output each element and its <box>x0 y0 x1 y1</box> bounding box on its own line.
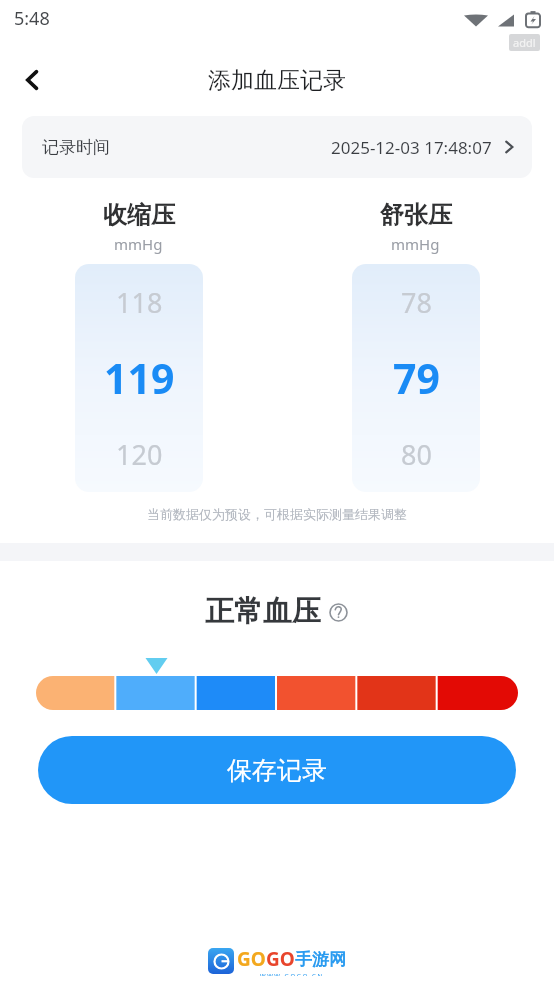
button[interactable]: 返回 <box>10 57 56 103</box>
button[interactable]: 记录时间 <box>22 116 532 178</box>
staticText: mmHg <box>391 234 440 254</box>
staticText: 5:48 <box>14 6 50 31</box>
staticText: 80 <box>401 436 432 473</box>
staticText: W W W . G O G O . C N <box>260 972 323 976</box>
staticText: 保存记录 <box>227 755 327 786</box>
staticText: mmHg <box>114 234 163 254</box>
staticText: GO <box>266 946 295 972</box>
staticText: 79 <box>393 350 440 406</box>
staticText: 舒张压 <box>380 200 452 230</box>
staticText: 2025-12-03 17:48:07 <box>331 136 492 159</box>
staticText: addl <box>513 35 536 50</box>
staticText: 添加血压记录 <box>208 66 346 95</box>
button[interactable]: 说明 <box>327 601 349 623</box>
staticText: 120 <box>116 436 163 473</box>
button[interactable]: 118 <box>75 264 203 492</box>
button[interactable]: 保存记录 <box>38 736 516 804</box>
staticText: 手游网 <box>295 949 346 970</box>
staticText: 收缩压 <box>103 200 175 230</box>
staticText: 119 <box>104 350 175 406</box>
staticText: 记录时间 <box>42 137 110 158</box>
staticText: 当前数据仅为预设，可根据实际测量结果调整 <box>0 506 554 522</box>
staticText: 正常血压 <box>205 593 321 630</box>
staticText: 118 <box>116 284 163 321</box>
staticText: 78 <box>401 284 432 321</box>
button[interactable]: 78 <box>352 264 480 492</box>
staticText: GO <box>237 946 266 972</box>
